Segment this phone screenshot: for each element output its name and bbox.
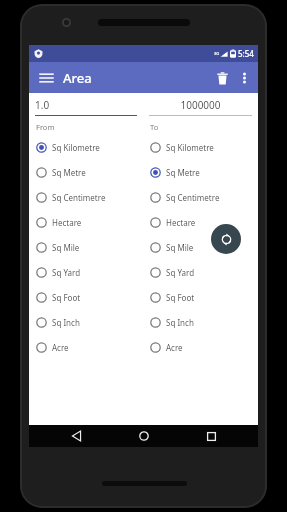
staticText: Sq Centimetre	[166, 192, 220, 203]
button[interactable]: Delete	[210, 66, 234, 90]
staticText: Sq Kilometre	[52, 142, 100, 153]
staticText: Sq Mile	[166, 242, 194, 253]
staticText: Sq Inch	[52, 317, 80, 328]
staticText: Hectare	[52, 217, 82, 228]
staticText: Acre	[166, 342, 183, 353]
staticText: Area	[63, 69, 92, 87]
staticText: Sq Yard	[52, 267, 81, 278]
button[interactable]: Sq Foot	[143, 285, 258, 310]
button[interactable]: Sq Mile	[143, 235, 258, 260]
staticText: 3G	[214, 51, 220, 56]
button[interactable]: Hectare	[29, 210, 143, 235]
button[interactable]: Sq Centimetre	[29, 185, 143, 210]
button[interactable]: Open navigation drawer	[35, 67, 57, 89]
button[interactable]: Sq Foot	[29, 285, 143, 310]
button[interactable]: Sq Kilometre	[29, 135, 143, 160]
button[interactable]: Sq Yard	[143, 260, 258, 285]
staticText: Sq Yard	[166, 267, 195, 278]
staticText: From	[36, 122, 143, 132]
staticText: 1.0	[35, 98, 50, 112]
button[interactable]: Hectare	[143, 210, 258, 235]
button[interactable]: Sq Yard	[29, 260, 143, 285]
button[interactable]: 1.0	[35, 98, 137, 116]
button[interactable]: Home	[124, 425, 164, 447]
button[interactable]: Sq Inch	[29, 310, 143, 335]
button[interactable]: Recent apps	[191, 425, 231, 447]
staticText: Sq Metre	[52, 167, 86, 178]
button[interactable]: Acre	[29, 335, 143, 360]
button[interactable]: Acre	[143, 335, 258, 360]
button[interactable]: Sq Centimetre	[143, 185, 258, 210]
button[interactable]: More options	[234, 68, 254, 88]
staticText: 5:54	[238, 48, 254, 59]
button[interactable]: Sq Mile	[29, 235, 143, 260]
button[interactable]: Swap units	[211, 224, 241, 254]
button[interactable]: Sq Metre	[29, 160, 143, 185]
staticText: Acre	[52, 342, 69, 353]
staticText: Sq Inch	[166, 317, 194, 328]
staticText: Sq Metre	[166, 167, 200, 178]
button[interactable]: 1000000	[149, 98, 252, 116]
button[interactable]: Sq Inch	[143, 310, 258, 335]
button[interactable]: Sq Metre	[143, 160, 258, 185]
staticText: 1000000	[149, 98, 252, 112]
staticText: To	[150, 122, 258, 132]
staticText: Sq Foot	[52, 292, 81, 303]
staticText: Sq Centimetre	[52, 192, 106, 203]
button[interactable]: Back	[56, 425, 96, 447]
button[interactable]: Sq Kilometre	[143, 135, 258, 160]
staticText: Hectare	[166, 217, 196, 228]
staticText: Sq Mile	[52, 242, 80, 253]
staticText: Sq Foot	[166, 292, 195, 303]
staticText: Sq Kilometre	[166, 142, 214, 153]
